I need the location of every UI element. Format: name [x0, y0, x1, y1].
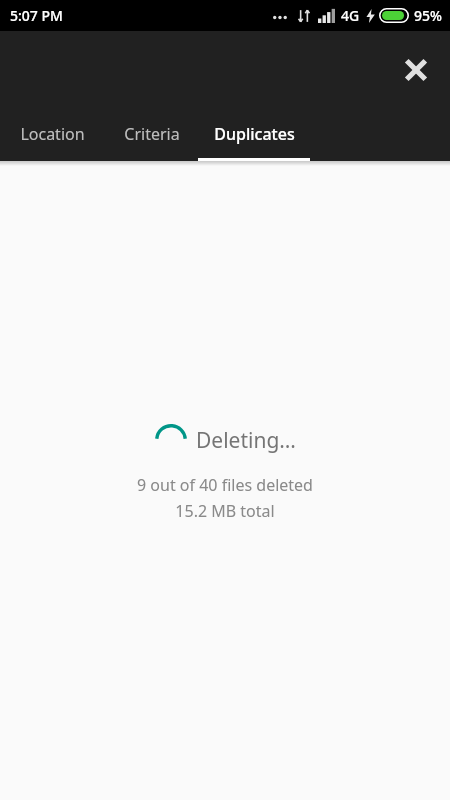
button[interactable]: Criteria	[105, 107, 198, 161]
staticText: Deleting…	[196, 426, 296, 455]
staticText: 9 out of 40 files deleted	[137, 474, 313, 496]
staticText: Location	[20, 123, 85, 145]
button[interactable]: Close	[392, 46, 440, 94]
staticText: 5:07 PM	[10, 6, 63, 25]
button[interactable]: Duplicates	[198, 107, 310, 161]
staticText: 4G	[341, 6, 360, 25]
button[interactable]: Location	[0, 107, 105, 161]
staticText: 15.2 MB total	[175, 500, 275, 522]
staticText: Duplicates	[214, 123, 295, 145]
staticText: Criteria	[124, 123, 180, 145]
staticText: 95%	[414, 6, 442, 25]
